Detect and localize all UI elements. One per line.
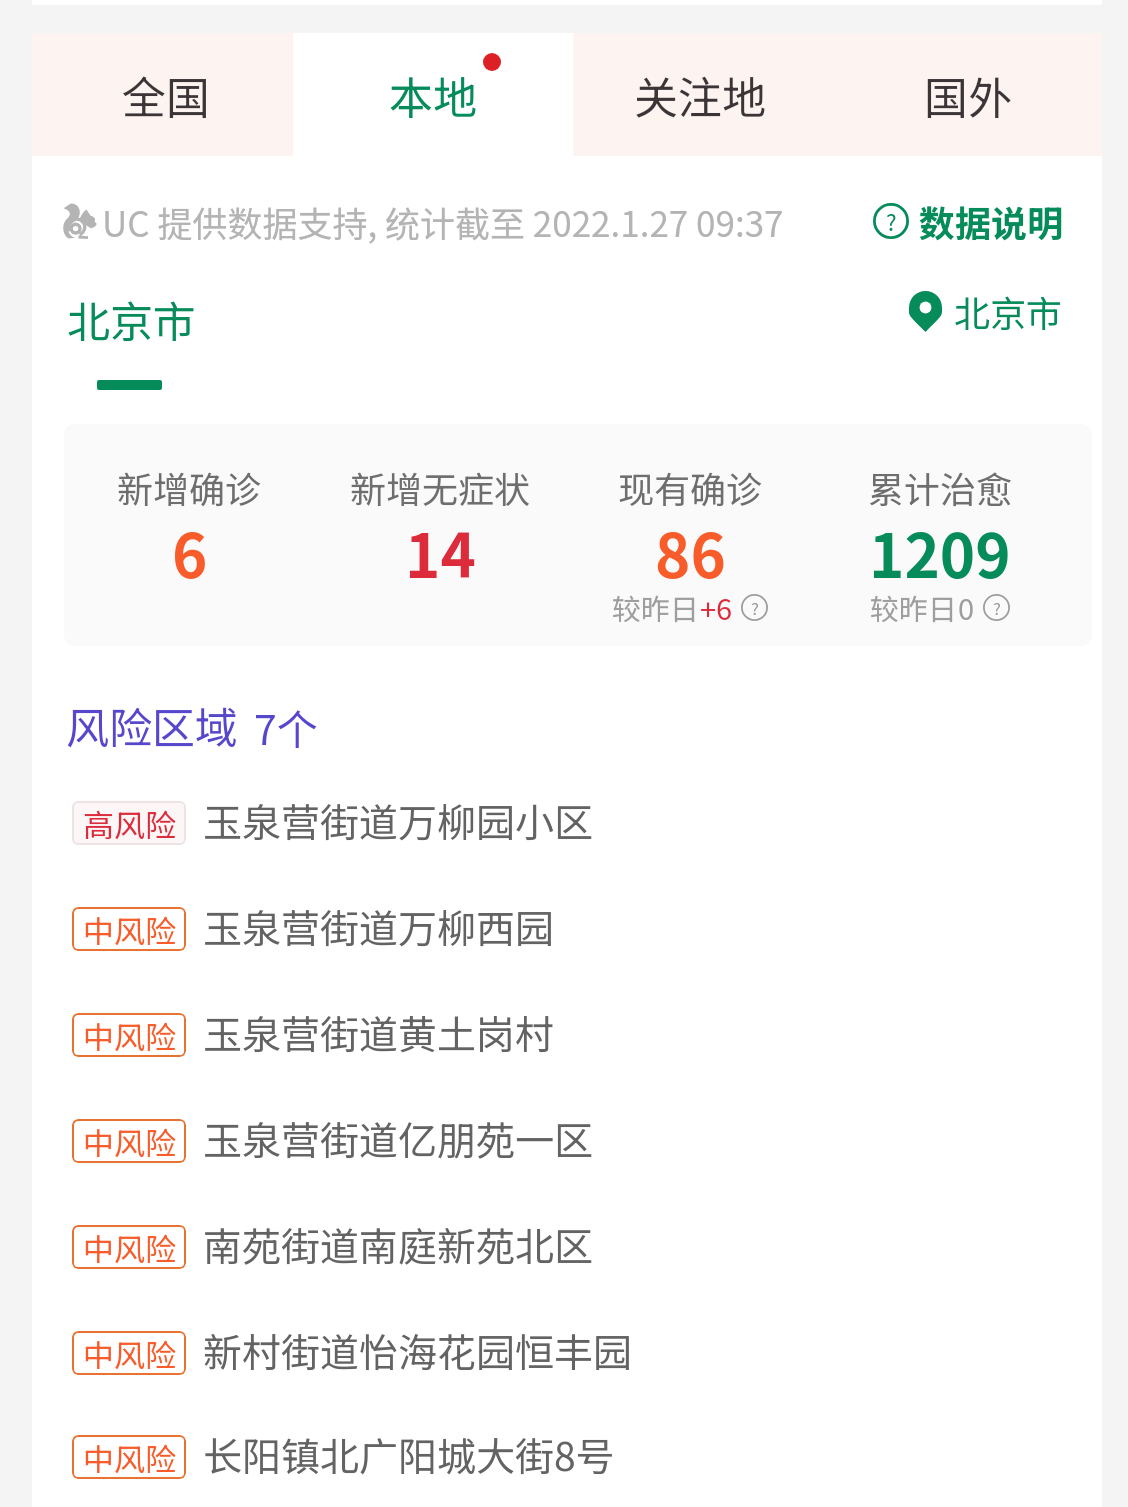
staticText: 14 xyxy=(405,508,476,595)
staticText: 数据说明 xyxy=(919,195,1064,247)
staticText: 玉泉营街道亿朋苑一区 xyxy=(203,1110,594,1166)
staticText: 玉泉营街道万柳园小区 xyxy=(203,792,594,848)
button[interactable]: 国外 xyxy=(834,33,1102,156)
staticText: 玉泉营街道万柳西园 xyxy=(203,898,555,954)
button[interactable]: ? xyxy=(873,195,1064,247)
button[interactable]: 新增确诊 xyxy=(64,461,315,600)
staticText: 南苑街道南庭新苑北区 xyxy=(203,1216,594,1272)
staticText: 关注地 xyxy=(634,63,766,127)
other: UC browser xyxy=(60,201,100,241)
button[interactable]: 高风险 xyxy=(32,770,1102,876)
staticText: 中风险 xyxy=(83,907,176,951)
staticText: 1209 xyxy=(869,508,1011,595)
staticText: 长阳镇北广阳城大街8号 xyxy=(203,1426,615,1482)
staticText: 中风险 xyxy=(83,1119,176,1163)
button[interactable]: 全国 xyxy=(32,33,299,156)
staticText: ? xyxy=(886,205,897,237)
staticText: +6 xyxy=(700,586,733,628)
other: Change location xyxy=(909,291,942,332)
staticText: 北京市 xyxy=(954,285,1063,337)
staticText: 全国 xyxy=(122,63,210,127)
staticText: 6 xyxy=(172,508,208,595)
staticText: 新增无症状 xyxy=(350,461,531,513)
staticText: 中风险 xyxy=(83,1013,176,1057)
button[interactable]: 中风险 xyxy=(32,876,1102,982)
button[interactable]: 累计治愈 xyxy=(815,461,1065,642)
staticText: 现有确诊 xyxy=(618,461,763,513)
staticText: 中风险 xyxy=(83,1435,176,1479)
staticText: 风险区域 xyxy=(66,694,238,756)
button[interactable]: Change location xyxy=(909,288,1063,340)
button[interactable]: 中风险 xyxy=(32,982,1102,1088)
staticText: 国外 xyxy=(924,63,1012,127)
staticText: 较昨日 xyxy=(612,586,700,628)
button[interactable]: 本地 xyxy=(299,33,566,156)
button[interactable]: 中风险 xyxy=(32,1406,1102,1507)
button[interactable]: 中风险 xyxy=(32,1300,1102,1406)
staticText: 中风险 xyxy=(83,1331,176,1375)
staticText: 较昨日 xyxy=(870,586,958,628)
staticText: 本地 xyxy=(389,63,477,127)
staticText: 新增确诊 xyxy=(117,461,262,513)
staticText: UC 提供数据支持, 统计截至 2022.1.27 09:37 xyxy=(102,196,784,247)
staticText: 86 xyxy=(655,508,726,595)
staticText: 高风险 xyxy=(83,801,176,845)
staticText: ? xyxy=(993,596,1001,620)
staticText: ? xyxy=(751,596,759,620)
staticText: 玉泉营街道黄土岗村 xyxy=(203,1004,555,1060)
staticText: 0 xyxy=(958,586,975,628)
button[interactable]: 中风险 xyxy=(32,1194,1102,1300)
button[interactable]: 北京市 xyxy=(67,288,196,390)
staticText: 累计治愈 xyxy=(868,461,1013,513)
staticText: 中风险 xyxy=(83,1225,176,1269)
button[interactable]: 现有确诊 xyxy=(565,461,815,642)
button[interactable]: 关注地 xyxy=(566,33,834,156)
staticText: 北京市 xyxy=(67,288,196,350)
staticText: 7个 xyxy=(254,697,318,756)
button[interactable]: 新增无症状 xyxy=(315,461,565,600)
button[interactable]: 中风险 xyxy=(32,1088,1102,1194)
staticText: 新村街道怡海花园恒丰园 xyxy=(203,1322,633,1378)
